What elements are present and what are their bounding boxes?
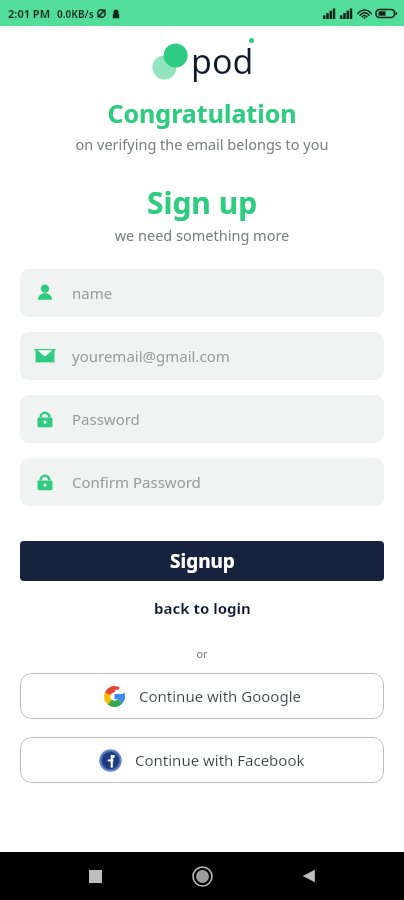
button[interactable]: Password <box>20 395 384 443</box>
staticText: Continue with Gooogle <box>139 686 301 706</box>
button[interactable]: back to login <box>0 594 404 622</box>
staticText: or <box>0 646 404 661</box>
staticText: 2:01 PM <box>8 6 51 21</box>
staticText: pod <box>191 38 254 84</box>
staticText: on verifying the email belongs to you <box>0 134 404 154</box>
staticText: Congratulation <box>0 96 404 130</box>
staticText: youremail@gmail.com <box>72 346 230 366</box>
staticText: Signup <box>170 548 235 574</box>
button[interactable]: Signup <box>20 541 384 581</box>
staticText: back to login <box>154 598 251 618</box>
button[interactable]: Back <box>292 859 326 893</box>
staticText: name <box>72 283 113 303</box>
staticText: we need something more <box>0 225 404 245</box>
button[interactable]: Recent apps <box>78 859 112 893</box>
button[interactable]: name <box>20 269 384 317</box>
staticText: 0.0KB/s <box>57 7 94 21</box>
button[interactable]: Continue with Facebook <box>20 737 384 783</box>
staticText: Continue with Facebook <box>135 750 305 770</box>
button[interactable]: Confirm Password <box>20 458 384 506</box>
staticText: Password <box>72 409 140 429</box>
staticText: Sign up <box>0 182 404 223</box>
staticText: Confirm Password <box>72 472 201 492</box>
button[interactable]: youremail@gmail.com <box>20 332 384 380</box>
button[interactable]: Home <box>185 859 219 893</box>
button[interactable]: Continue with Gooogle <box>20 673 384 719</box>
